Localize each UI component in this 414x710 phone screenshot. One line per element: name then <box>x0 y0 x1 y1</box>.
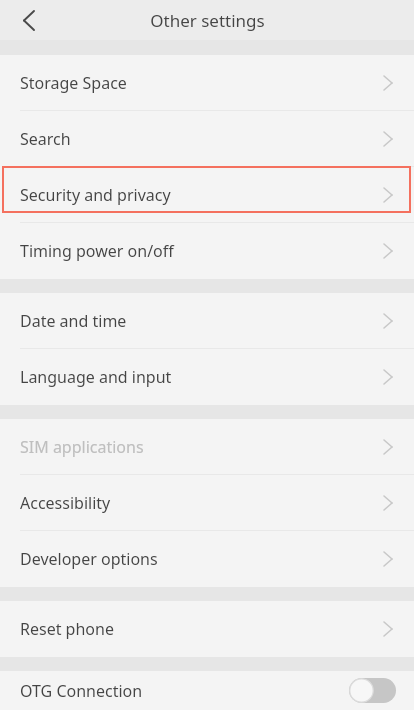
staticText: Other settings <box>150 9 265 32</box>
button[interactable]: Reset phone <box>0 601 414 657</box>
staticText: Security and privacy <box>20 184 384 206</box>
staticText: Developer options <box>20 548 384 570</box>
button[interactable]: Security and privacy <box>0 167 414 223</box>
staticText: Reset phone <box>20 618 384 640</box>
button[interactable]: Language and input <box>0 349 414 405</box>
button: SIM applications <box>0 419 414 475</box>
staticText: Accessibility <box>20 492 384 514</box>
button[interactable]: Date and time <box>0 293 414 349</box>
button[interactable]: OTG Connection <box>0 671 414 710</box>
button[interactable]: Storage Space <box>0 55 414 111</box>
staticText: SIM applications <box>20 436 384 458</box>
staticText: Date and time <box>20 310 384 332</box>
staticText: Search <box>20 128 384 150</box>
staticText: OTG Connection <box>20 680 349 702</box>
button[interactable]: Accessibility <box>0 475 414 531</box>
staticText: Storage Space <box>20 72 384 94</box>
button[interactable]: Developer options <box>0 531 414 587</box>
button[interactable]: Timing power on/off <box>0 223 414 279</box>
button[interactable]: Search <box>0 111 414 167</box>
staticText: Timing power on/off <box>20 240 384 262</box>
other: OTG Connection toggle, off <box>349 678 396 703</box>
button[interactable]: Back <box>0 0 58 40</box>
staticText: Language and input <box>20 366 384 388</box>
